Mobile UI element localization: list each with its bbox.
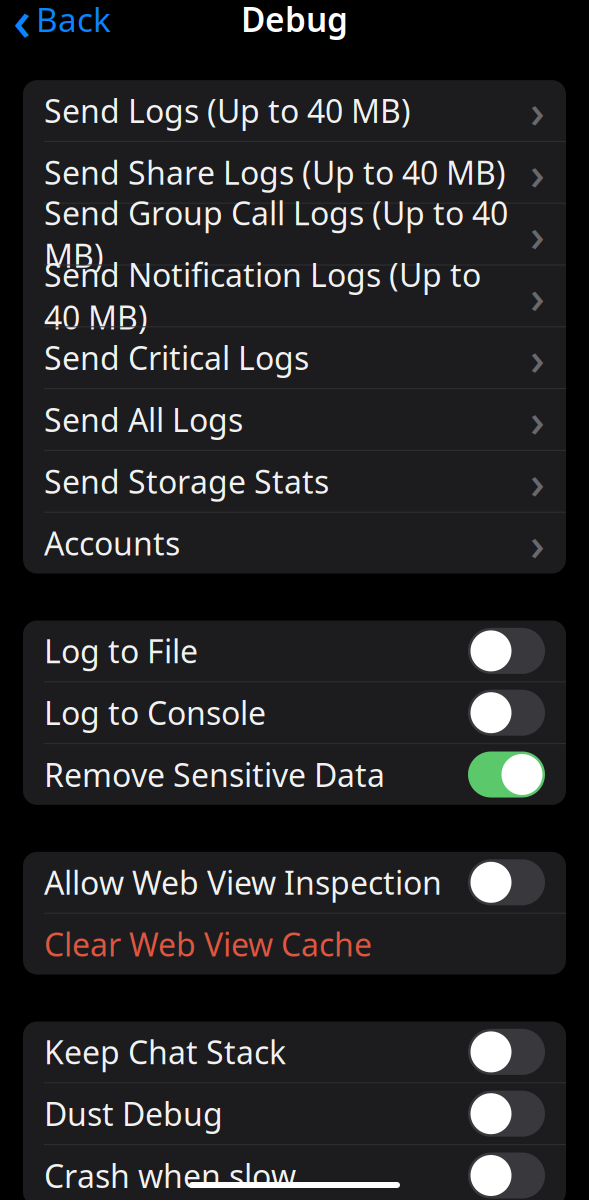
staticText: Remove Sensitive Data xyxy=(44,753,385,796)
staticText: Debug xyxy=(241,0,348,41)
staticText: Clear Web View Cache xyxy=(44,923,372,965)
button[interactable]: Log to File xyxy=(23,620,566,681)
staticText: › xyxy=(530,328,545,388)
button[interactable]: Log to Console xyxy=(23,682,566,743)
staticText: Send All Logs xyxy=(44,398,243,441)
button[interactable]: Send Logs (Up to 40 MB) xyxy=(23,80,566,141)
staticText: › xyxy=(530,142,545,202)
button[interactable]: Dust Debug xyxy=(23,1083,566,1144)
button[interactable]: Allow Web View Inspection xyxy=(23,852,566,913)
button[interactable]: Send Share Logs (Up to 40 MB) xyxy=(23,142,566,203)
staticText: › xyxy=(530,204,545,264)
staticText: Send Logs (Up to 40 MB) xyxy=(44,89,411,132)
button[interactable]: Accounts xyxy=(23,513,566,573)
staticText: › xyxy=(530,266,545,326)
button[interactable]: Send Group Call Logs (Up to 40 MB) xyxy=(23,204,566,264)
button[interactable]: Clear Web View Cache xyxy=(23,914,566,974)
staticText: › xyxy=(530,513,545,573)
button[interactable]: Send Critical Logs xyxy=(23,327,566,388)
staticText: Allow Web View Inspection xyxy=(44,861,442,904)
staticText: › xyxy=(530,451,545,511)
button[interactable]: Remove Sensitive Data xyxy=(23,744,566,805)
staticText: Send Notification Logs (Up to 40 MB) xyxy=(44,253,481,338)
staticText: Crash when slow xyxy=(44,1154,296,1197)
button[interactable]: Keep Chat Stack xyxy=(23,1021,566,1082)
staticText: › xyxy=(530,389,545,450)
staticText: Accounts xyxy=(44,522,180,564)
staticText: Back xyxy=(36,0,111,41)
staticText: Send Critical Logs xyxy=(44,336,309,379)
button[interactable]: Send Storage Stats xyxy=(23,451,566,512)
staticText: Log to File xyxy=(44,630,198,672)
button[interactable]: Send All Logs xyxy=(23,389,566,450)
staticText: › xyxy=(530,80,545,141)
staticText: Dust Debug xyxy=(44,1092,223,1135)
staticText: Send Storage Stats xyxy=(44,460,329,503)
staticText: Send Share Logs (Up to 40 MB) xyxy=(44,151,506,194)
button[interactable]: ‹ xyxy=(0,0,121,42)
staticText: Keep Chat Stack xyxy=(44,1031,286,1073)
staticText: Send Group Call Logs (Up to 40 MB) xyxy=(44,192,508,277)
staticText: Log to Console xyxy=(44,691,266,734)
staticText: ‹ xyxy=(13,0,31,56)
button[interactable]: Crash when slow xyxy=(23,1145,566,1200)
button[interactable]: Send Notification Logs (Up to 40 MB) xyxy=(23,265,566,326)
